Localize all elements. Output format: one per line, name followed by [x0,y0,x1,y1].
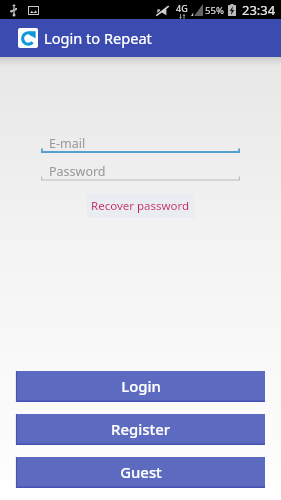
staticText: 4G [176,2,188,14]
other: USB connected [11,4,17,16]
button[interactable]: Login [16,371,265,402]
staticText: 23:34 [242,1,276,19]
staticText: Password [49,163,106,176]
other: Silent mode [156,5,169,16]
button[interactable]: E-mail [41,135,240,153]
staticText: Recover password [91,198,190,214]
staticText: Guest [120,462,162,482]
button[interactable]: Guest [16,457,265,488]
other: Screenshot [28,6,39,15]
other: Battery charging [228,4,236,16]
staticText: Register [111,419,170,439]
staticText: 55% [205,4,224,17]
button[interactable]: Password [41,163,240,181]
button[interactable]: Recover password [87,194,194,218]
other: Signal strength [191,4,203,16]
button[interactable]: Register [16,414,265,445]
staticText: Login [121,376,161,396]
staticText: Login to Repeat [44,28,152,48]
staticText: E-mail [49,135,86,148]
